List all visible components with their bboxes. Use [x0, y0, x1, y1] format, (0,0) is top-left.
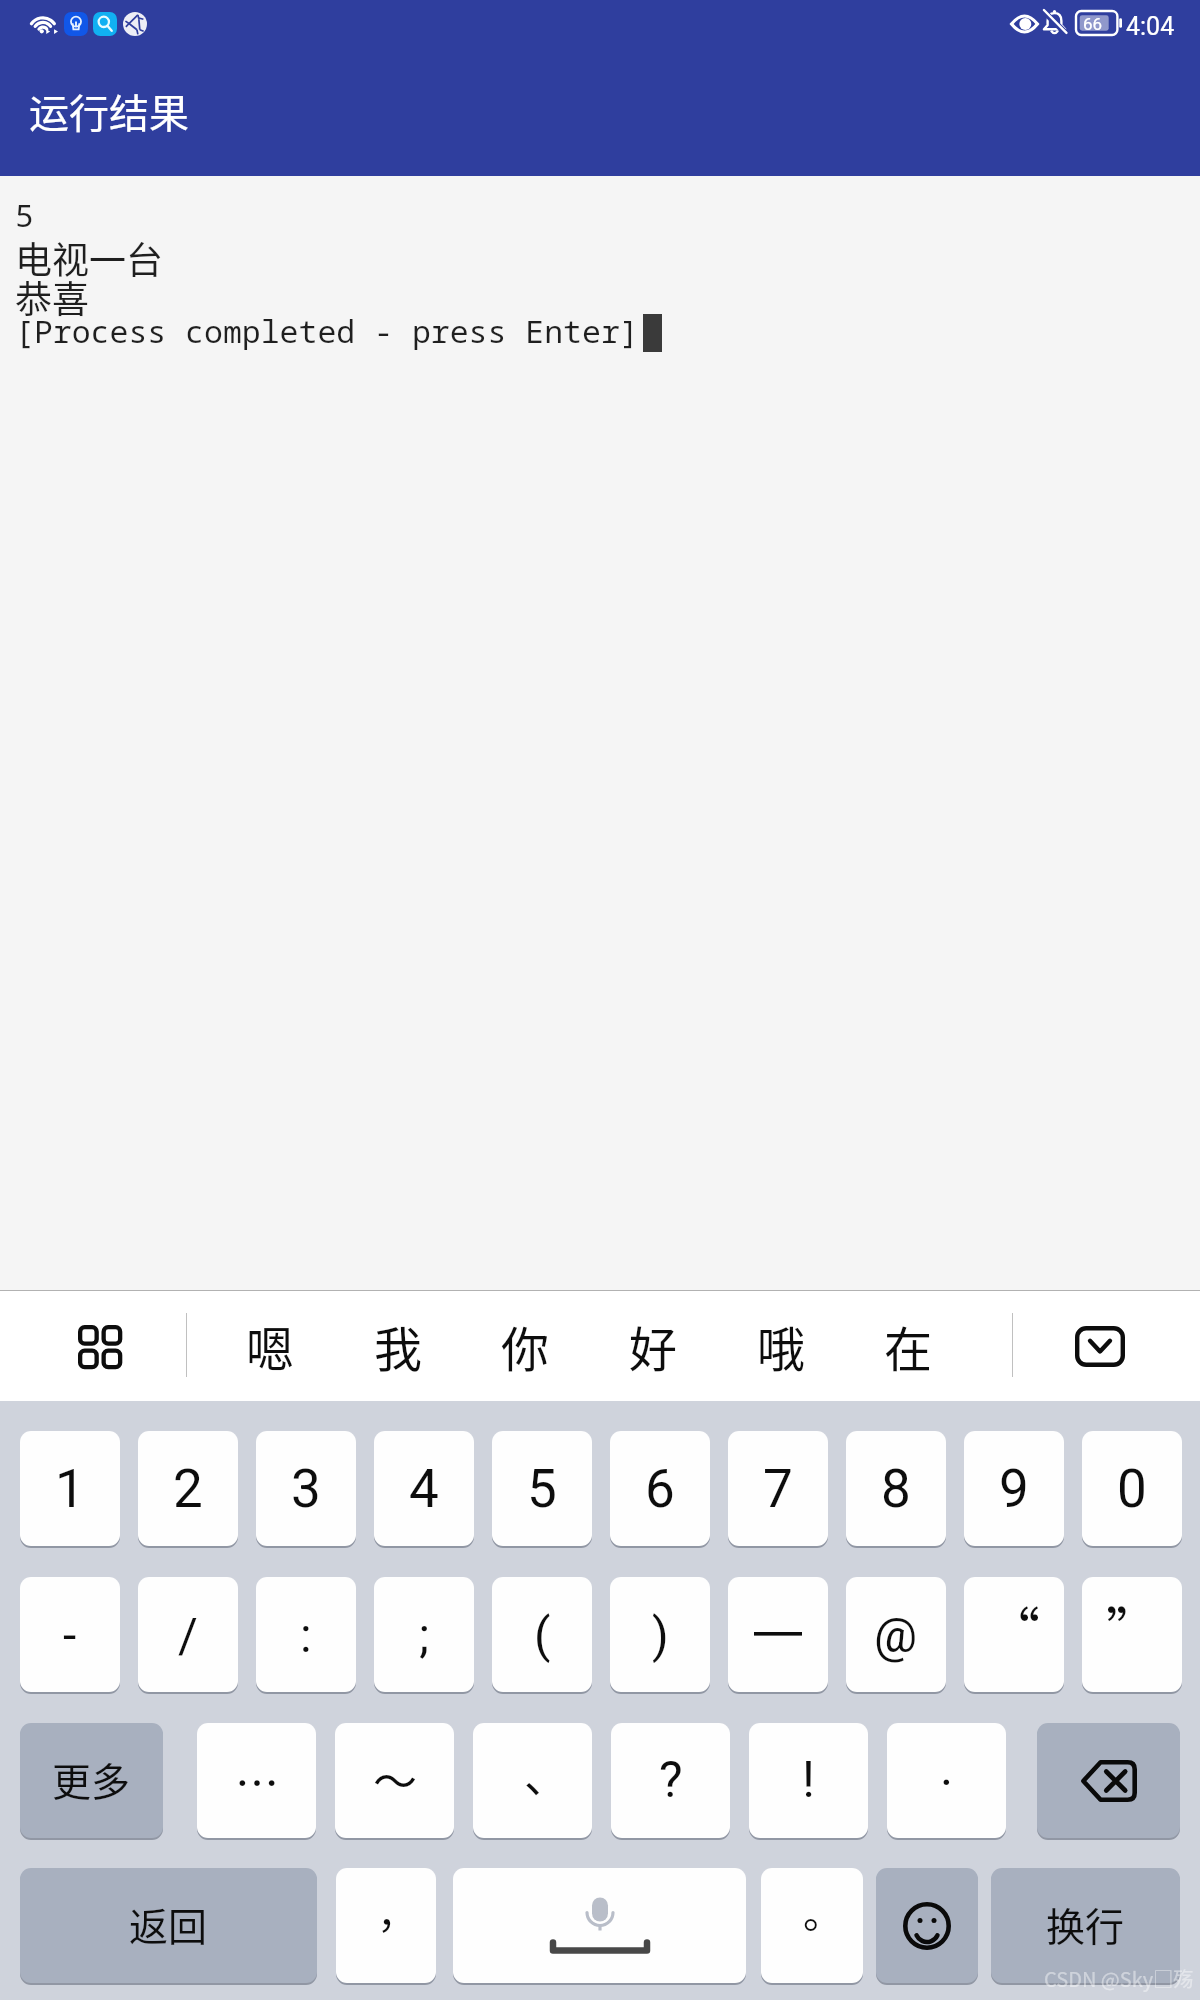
button[interactable] — [728, 1577, 828, 1692]
staticText: : — [300, 1607, 312, 1663]
button[interactable]: Keyboard layouts — [36, 1291, 164, 1401]
other: Battery 66 percent — [1076, 11, 1122, 35]
staticText: 、 — [524, 1742, 568, 1806]
button[interactable]: : — [256, 1577, 356, 1692]
staticText: 4 — [409, 1458, 439, 1520]
button[interactable]: Hide keyboard — [1036, 1291, 1164, 1401]
staticText: 3 — [291, 1458, 321, 1520]
button[interactable]: 在 — [848, 1291, 968, 1401]
staticText: 5 — [527, 1458, 557, 1520]
button[interactable]: ) — [610, 1577, 710, 1692]
staticText: CSDN @Sky□殇 — [1044, 1964, 1194, 1993]
button[interactable]: 0 — [1082, 1431, 1182, 1546]
staticText: [Process completed - press Enter] — [15, 309, 639, 352]
staticText: 我 — [374, 1311, 423, 1381]
button[interactable]: ” — [1082, 1577, 1182, 1692]
button[interactable]: 嗯 — [210, 1291, 330, 1401]
staticText: 你 — [501, 1311, 550, 1381]
staticText: 7 — [763, 1458, 793, 1520]
button[interactable]: 5 — [492, 1431, 592, 1546]
staticText: . — [940, 1739, 954, 1798]
staticText: 哦 — [757, 1311, 806, 1381]
staticText: - — [63, 1607, 77, 1663]
staticText: ⋯ — [235, 1749, 279, 1813]
other: Search — [93, 12, 117, 36]
staticText: 恭喜 — [15, 270, 89, 324]
staticText: 电视一台 — [15, 231, 163, 285]
other: Silent mode — [1043, 10, 1066, 36]
button[interactable]: 哦 — [721, 1291, 841, 1401]
staticText: 4:04 — [1126, 12, 1175, 41]
other: Smart assistant — [64, 12, 88, 36]
staticText: 8 — [881, 1458, 911, 1520]
button[interactable]: “ — [964, 1577, 1064, 1692]
staticText: 。 — [803, 1882, 843, 1940]
staticText: ， — [377, 1882, 417, 1940]
button[interactable]: 2 — [138, 1431, 238, 1546]
button[interactable]: 9 — [964, 1431, 1064, 1546]
staticText: / — [178, 1607, 198, 1663]
staticText: 在 — [884, 1311, 933, 1381]
staticText: “ — [988, 1591, 1041, 1666]
staticText: ) — [652, 1607, 669, 1663]
button[interactable]: 、 — [473, 1723, 592, 1838]
staticText: 好 — [629, 1311, 678, 1381]
button[interactable]: ⋯ — [197, 1723, 316, 1838]
staticText: ～ — [373, 1747, 417, 1811]
staticText: @ — [874, 1607, 918, 1663]
staticText: ; — [419, 1607, 430, 1663]
staticText: 66 — [1083, 14, 1103, 34]
button[interactable]: ; — [374, 1577, 474, 1692]
button[interactable]: 3 — [256, 1431, 356, 1546]
staticText: 运行结果 — [29, 82, 189, 140]
staticText: ( — [534, 1607, 551, 1663]
staticText: 更多 — [52, 1751, 131, 1807]
button[interactable]: Space — [453, 1868, 746, 1983]
button[interactable]: ～ — [335, 1723, 454, 1838]
button[interactable]: Console output — [0, 176, 1200, 1289]
button[interactable]: ( — [492, 1577, 592, 1692]
staticText: 6 — [645, 1458, 675, 1520]
button[interactable]: 。 — [761, 1868, 863, 1983]
button[interactable]: @ — [846, 1577, 946, 1692]
other: Eye comfort — [1011, 14, 1038, 34]
button[interactable]: 7 — [728, 1431, 828, 1546]
button[interactable]: ? — [611, 1723, 730, 1838]
button[interactable]: 返回 — [20, 1868, 317, 1983]
button[interactable]: - — [20, 1577, 120, 1692]
staticText: 2 — [173, 1458, 203, 1520]
staticText: ! — [802, 1751, 815, 1810]
button[interactable]: ! — [749, 1723, 868, 1838]
staticText: 1 — [55, 1458, 85, 1520]
button[interactable]: 你 — [465, 1291, 585, 1401]
staticText: 5 — [15, 193, 34, 236]
staticText: ” — [1106, 1591, 1159, 1666]
other: Browser — [123, 12, 147, 36]
button[interactable]: / — [138, 1577, 238, 1692]
other: Wi-Fi — [30, 11, 58, 37]
button[interactable]: 6 — [610, 1431, 710, 1546]
staticText: 嗯 — [246, 1311, 295, 1381]
button[interactable]: 换行 — [991, 1868, 1180, 1983]
staticText: ? — [659, 1751, 683, 1810]
staticText: 换行 — [1046, 1896, 1125, 1952]
button[interactable]: 好 — [593, 1291, 713, 1401]
button[interactable]: Backspace — [1037, 1723, 1180, 1838]
button[interactable]: 8 — [846, 1431, 946, 1546]
button[interactable]: 1 — [20, 1431, 120, 1546]
button[interactable]: Emoji — [876, 1868, 978, 1983]
button[interactable]: . — [887, 1723, 1006, 1838]
staticText: 0 — [1117, 1458, 1147, 1520]
staticText: 9 — [999, 1458, 1029, 1520]
staticText: 返回 — [129, 1896, 208, 1952]
button[interactable]: ， — [336, 1868, 436, 1983]
button[interactable]: 4 — [374, 1431, 474, 1546]
button[interactable]: 我 — [338, 1291, 458, 1401]
button[interactable]: 更多 — [20, 1723, 163, 1838]
